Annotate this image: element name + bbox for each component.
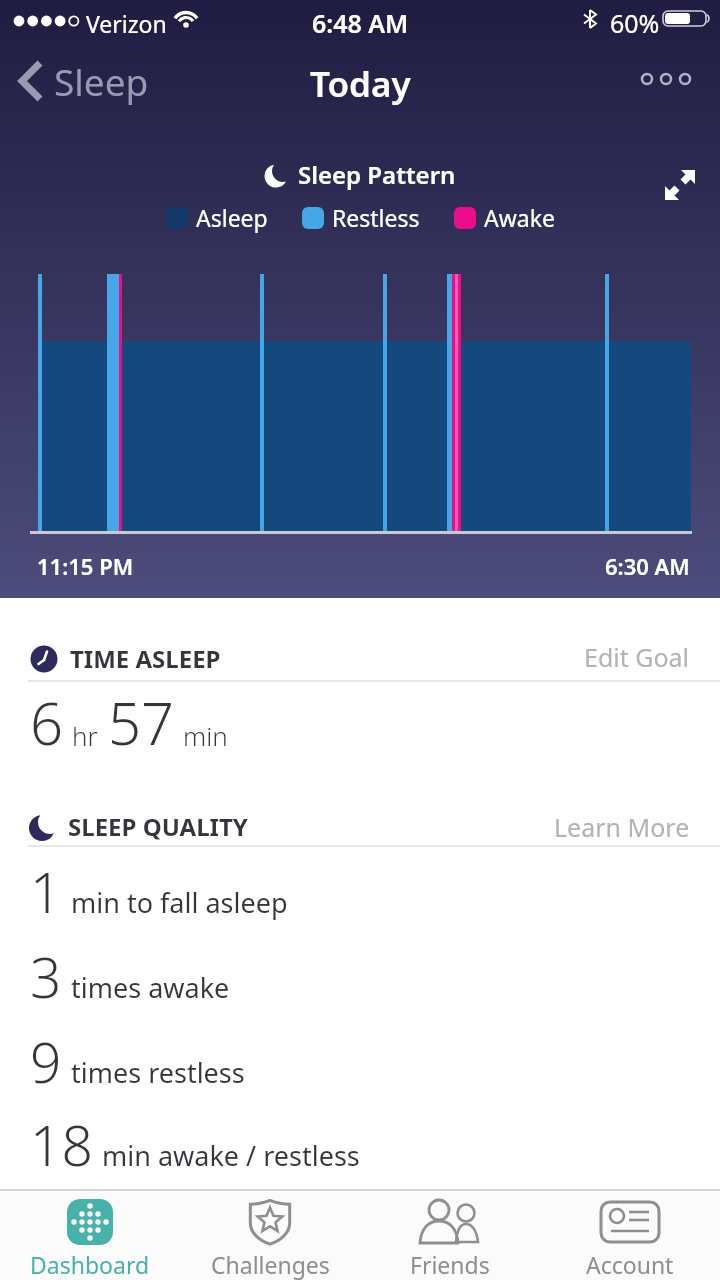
staticText: SLEEP QUALITY: [68, 810, 248, 843]
staticText: 18: [30, 1107, 93, 1182]
button[interactable]: Account: [540, 1191, 720, 1280]
button[interactable]: [660, 166, 700, 206]
staticText: 3: [30, 939, 62, 1014]
staticText: TIME ASLEEP: [70, 642, 221, 675]
staticText: min awake / restless: [102, 1137, 360, 1174]
staticText: Sleep: [54, 56, 149, 106]
staticText: 1: [30, 854, 62, 929]
staticText: Challenges: [211, 1249, 330, 1280]
staticText: 6: [30, 683, 64, 762]
staticText: Sleep Pattern: [298, 158, 456, 191]
staticText: Dashboard: [30, 1249, 150, 1280]
button[interactable]: Dashboard: [0, 1191, 180, 1280]
staticText: 60%: [610, 6, 660, 40]
staticText: Account: [586, 1249, 674, 1280]
button[interactable]: Edit Goal: [584, 640, 690, 674]
staticText: times restless: [71, 1054, 245, 1091]
staticText: 57: [108, 683, 175, 762]
button[interactable]: Sleep: [14, 56, 149, 106]
staticText: Today: [310, 60, 411, 108]
staticText: min to fall asleep: [71, 884, 288, 921]
staticText: Awake: [484, 202, 555, 233]
button[interactable]: [638, 70, 698, 90]
staticText: min: [183, 718, 228, 753]
staticText: Learn More: [554, 810, 690, 844]
staticText: hr: [72, 718, 98, 753]
staticText: Edit Goal: [584, 640, 690, 674]
staticText: times awake: [71, 969, 230, 1006]
staticText: 11:15 PM: [37, 551, 134, 581]
staticText: Verizon: [86, 8, 167, 39]
staticText: 9: [30, 1024, 62, 1099]
staticText: Friends: [410, 1249, 490, 1280]
button[interactable]: Friends: [360, 1191, 540, 1280]
staticText: 6:30 AM: [605, 551, 690, 581]
button[interactable]: Challenges: [180, 1191, 360, 1280]
button[interactable]: Learn More: [554, 810, 690, 844]
staticText: 6:48 AM: [312, 6, 409, 40]
staticText: Asleep: [196, 202, 268, 233]
staticText: Restless: [332, 202, 420, 233]
